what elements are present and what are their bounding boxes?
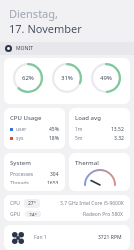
- staticText: 18%: [49, 135, 59, 142]
- staticText: CPU Usage: [10, 114, 42, 122]
- staticText: GPU: [10, 211, 21, 217]
- staticText: 1m: [75, 126, 83, 133]
- staticText: 45%: [49, 126, 59, 133]
- staticText: Processes: [10, 171, 34, 178]
- staticText: 31%: [61, 74, 73, 82]
- staticText: Radeon Pro 580X: [83, 211, 124, 217]
- staticText: Load avg: [75, 114, 101, 122]
- staticText: 49%: [100, 74, 112, 82]
- staticText: 13.52: [111, 126, 124, 133]
- staticText: sys: [16, 135, 24, 142]
- staticText: System: [10, 159, 31, 167]
- staticText: 62%: [22, 74, 34, 82]
- staticText: 1653: [47, 180, 59, 184]
- staticText: Fan 1: [34, 234, 47, 241]
- staticText: 3721 RPM: [98, 234, 122, 241]
- staticText: 304: [50, 171, 59, 178]
- staticText: MONIT: [16, 45, 33, 52]
- staticText: CPU: [10, 200, 20, 207]
- staticText: 27°: [28, 200, 36, 207]
- staticText: Threads: [10, 180, 29, 184]
- staticText: 3.32: [114, 135, 124, 142]
- staticText: 17. November: [9, 21, 82, 36]
- staticText: Dienstag,: [9, 6, 58, 21]
- staticText: 5m: [75, 135, 83, 142]
- staticText: 3.7 GHz Intel Core i5-9600K: [60, 200, 124, 207]
- staticText: 24°: [29, 212, 37, 216]
- staticText: Thermal: [75, 159, 99, 167]
- staticText: user: [16, 126, 27, 133]
